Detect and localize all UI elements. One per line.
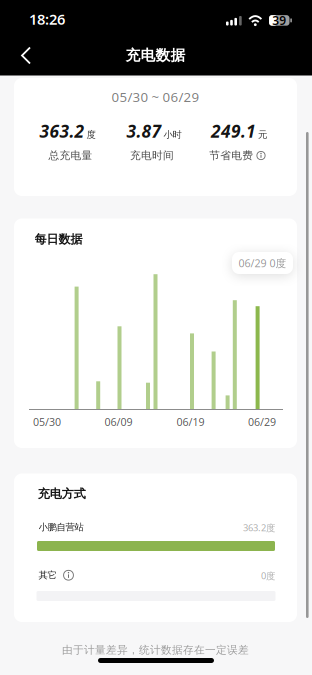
button[interactable]: 其它说明 [63, 570, 74, 581]
staticText: 节省电费 [209, 149, 253, 162]
staticText: 小鹏自营站 [38, 521, 83, 533]
staticText: 度 [86, 129, 95, 140]
staticText: 充电时间 [130, 149, 174, 162]
button[interactable]: Back [11, 40, 41, 71]
staticText: 充电方式 [38, 486, 86, 501]
staticText: 3.87 [126, 119, 161, 142]
staticText: 363.2 [39, 119, 84, 142]
staticText: 充电数据 [125, 46, 185, 64]
staticText: 每日数据 [35, 232, 83, 247]
staticText: 06/29 [248, 415, 276, 429]
staticText: 由于计量差异，统计数据存在一定误差 [62, 643, 249, 657]
staticText: 总充电量 [48, 149, 92, 162]
staticText: 18:26 [29, 9, 65, 29]
staticText: 小时 [163, 129, 181, 140]
staticText: 05/30 ~ 06/29 [111, 88, 199, 106]
staticText: 06/19 [176, 415, 204, 429]
staticText: 39 [272, 12, 286, 28]
button[interactable]: 节省电费说明 [256, 151, 266, 160]
staticText: 363.2度 [243, 521, 275, 534]
staticText: 06/09 [104, 415, 132, 429]
staticText: 元 [258, 129, 267, 140]
staticText: 05/30 [33, 415, 61, 429]
staticText: 其它 [38, 569, 56, 581]
staticText: 0度 [261, 569, 275, 582]
staticText: 06/29 0度 [238, 256, 286, 270]
staticText: 249.1 [211, 119, 256, 142]
